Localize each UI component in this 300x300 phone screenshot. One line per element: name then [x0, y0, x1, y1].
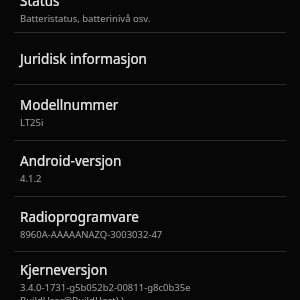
- button[interactable]: Kjerneversjon: [0, 252, 300, 300]
- button[interactable]: Android-versjon: [0, 141, 300, 196]
- staticText: 8960A-AAAAANAZQ-3003032-47: [20, 228, 163, 241]
- staticText: 4.1.2: [20, 172, 42, 185]
- staticText: 3.4.0-1731-g5b052b2-00811-g8c0b35e: [20, 281, 191, 294]
- staticText: Juridisk informasjon: [20, 50, 147, 68]
- staticText: Android-versjon: [20, 152, 122, 170]
- staticText: BuildUser@BuildHost) ): [20, 294, 124, 300]
- staticText: LT25i: [20, 116, 44, 129]
- button[interactable]: Radioprogramvare: [0, 197, 300, 251]
- staticText: Batteristatus, batterinivå osv.: [20, 12, 151, 24]
- staticText: Kjerneversjon: [20, 261, 108, 279]
- staticText: Status: [20, 0, 60, 10]
- staticText: Modellnummer: [20, 96, 119, 114]
- button[interactable]: Modellnummer: [0, 85, 300, 140]
- button[interactable]: Status: [0, 0, 300, 32]
- staticText: Radioprogramvare: [20, 208, 139, 226]
- button[interactable]: Juridisk informasjon: [0, 33, 300, 84]
